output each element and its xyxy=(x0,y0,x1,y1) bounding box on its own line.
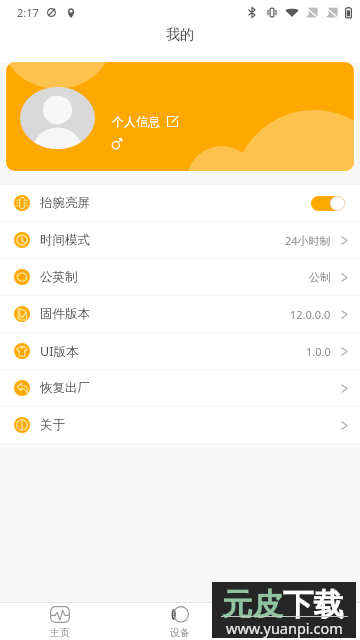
button[interactable]: 公英制 xyxy=(0,259,360,295)
staticText: 主页 xyxy=(50,626,70,639)
staticText: www.yuanpi.com xyxy=(226,618,343,638)
staticText: 设备 xyxy=(170,626,190,639)
button[interactable]: 时间模式 xyxy=(0,222,360,258)
staticText: 我的 xyxy=(166,26,194,44)
button[interactable]: 设备 xyxy=(120,603,240,640)
staticText: 公制 xyxy=(309,270,331,284)
button[interactable]: UI版本 xyxy=(0,333,360,369)
button[interactable]: 关于 xyxy=(0,407,360,443)
staticText: 元皮 xyxy=(222,586,283,624)
staticText: 2:17 xyxy=(17,5,39,20)
staticText: UI版本 xyxy=(40,343,79,360)
button[interactable]: 恢复出厂 xyxy=(0,370,360,406)
staticText: 1.0.0 xyxy=(306,344,331,359)
staticText: 固件版本 xyxy=(40,306,90,322)
other: 性别 xyxy=(112,138,122,149)
staticText: 个人信息 xyxy=(112,114,160,129)
button[interactable]: 抬腕亮屏 xyxy=(0,185,360,221)
staticText: 恢复出厂 xyxy=(40,380,90,396)
staticText: 下载 xyxy=(283,586,344,624)
staticText: 抬腕亮屏 xyxy=(40,195,90,211)
button[interactable]: 个人信息 xyxy=(6,62,354,171)
staticText: 关于 xyxy=(40,417,65,433)
staticText: 24小时制 xyxy=(285,233,331,248)
staticText: 12.0.0.0 xyxy=(290,307,331,322)
other: 编辑 xyxy=(167,116,178,127)
staticText: 时间模式 xyxy=(40,232,90,248)
staticText: 公英制 xyxy=(40,269,78,285)
button[interactable]: 主页 xyxy=(0,603,120,640)
button[interactable]: 固件版本 xyxy=(0,296,360,332)
